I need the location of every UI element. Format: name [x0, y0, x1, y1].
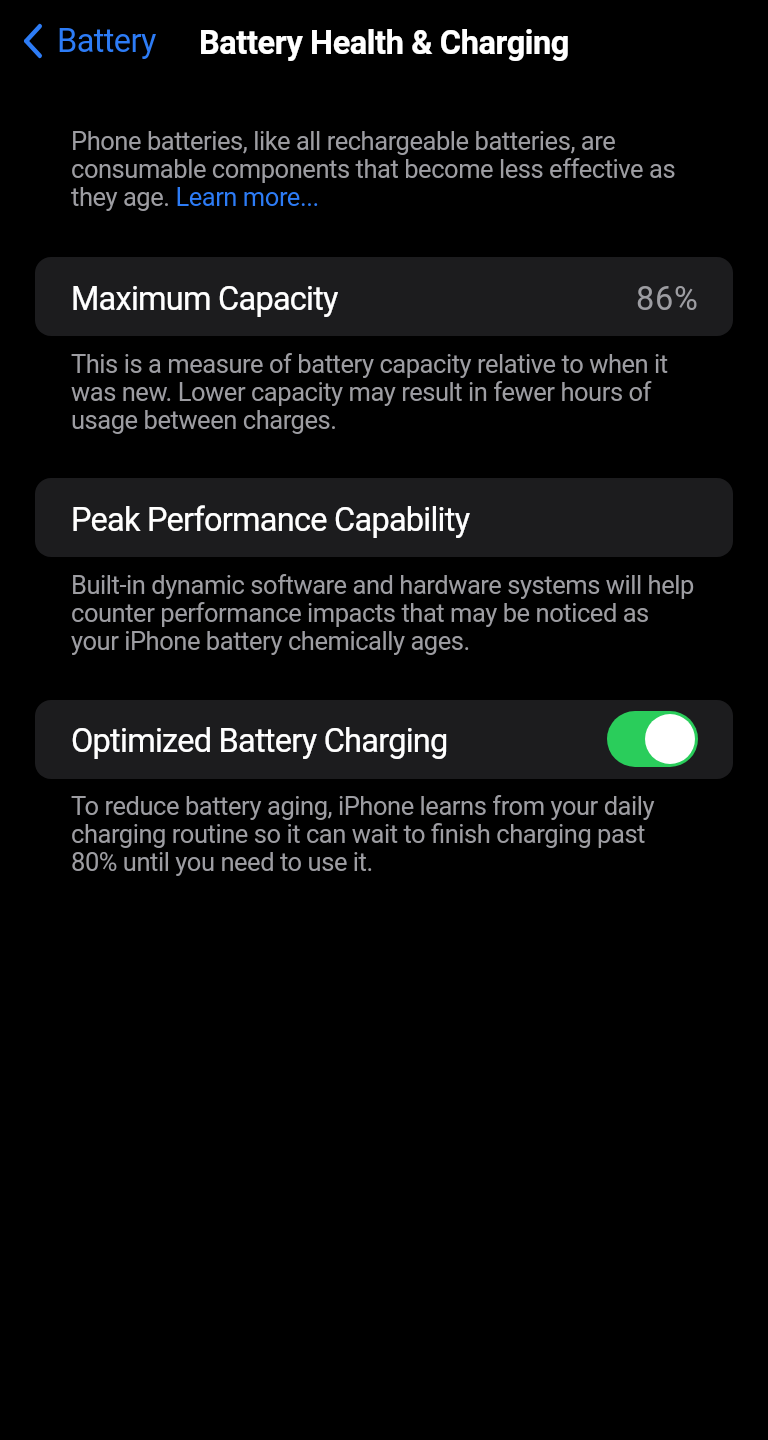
- button[interactable]: Optimized Battery Charging: [35, 700, 733, 779]
- staticText: Battery Health & Charging: [199, 24, 569, 62]
- button[interactable]: Maximum Capacity: [35, 257, 733, 336]
- staticText: Phone batteries, like all rechargeable b…: [71, 128, 695, 212]
- button[interactable]: Peak Performance Capability: [35, 478, 733, 557]
- staticText: Built-in dynamic software and hardware s…: [71, 572, 695, 656]
- staticText: 86%: [636, 280, 699, 318]
- staticText: This is a measure of battery capacity re…: [71, 351, 695, 435]
- staticText: To reduce battery aging, iPhone learns f…: [71, 793, 695, 877]
- button[interactable]: Battery: [16, 16, 162, 66]
- button[interactable]: Learn more...: [175, 182, 320, 210]
- staticText: Optimized Battery Charging: [71, 722, 448, 760]
- staticText: Battery: [57, 22, 156, 60]
- staticText: Peak Performance Capability: [71, 501, 470, 539]
- button[interactable]: Optimized Battery Charging, on: [607, 711, 698, 767]
- staticText: Maximum Capacity: [71, 280, 338, 318]
